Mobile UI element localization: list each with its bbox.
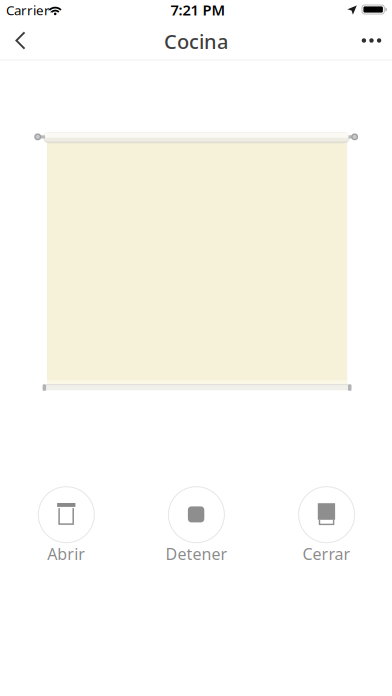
- button[interactable]: Abrir: [20, 483, 112, 563]
- staticText: Cerrar: [303, 543, 351, 564]
- staticText: Cocina: [164, 28, 228, 54]
- button[interactable]: More: [354, 29, 388, 51]
- staticText: Abrir: [47, 543, 85, 564]
- staticText: Detener: [165, 543, 227, 564]
- staticText: 7:21 PM: [170, 0, 225, 20]
- button[interactable]: Detener: [150, 483, 242, 563]
- button[interactable]: Back: [7, 29, 37, 51]
- staticText: Carrier: [6, 1, 50, 19]
- button[interactable]: Cerrar: [281, 483, 373, 563]
